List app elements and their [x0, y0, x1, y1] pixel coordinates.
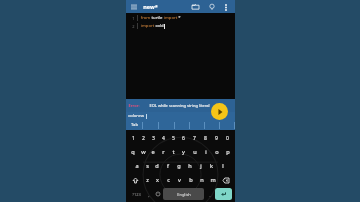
staticText: q — [131, 148, 135, 156]
button[interactable]: 8 — [200, 131, 211, 145]
button[interactable]: d — [152, 159, 162, 173]
button[interactable]: ?123 — [128, 188, 144, 200]
button[interactable]: 6 — [178, 131, 189, 145]
button[interactable]: q — [128, 145, 138, 159]
staticText: v — [178, 176, 181, 184]
button[interactable]: 5 — [168, 131, 178, 145]
button[interactable]: 2 — [138, 131, 148, 145]
button[interactable]: w — [138, 145, 148, 159]
staticText: 9 — [215, 135, 218, 142]
button[interactable]: 3 — [148, 131, 158, 145]
button[interactable]: c — [163, 173, 174, 187]
button[interactable]: s — [142, 159, 152, 173]
button[interactable]: x — [152, 173, 163, 187]
button[interactable]: 1 — [126, 13, 235, 99]
staticText: EOL while scanning string literal (<unkn… — [142, 103, 217, 108]
staticText: 7 — [193, 135, 196, 142]
button[interactable]: Enter — [215, 188, 232, 200]
button[interactable]: 0 — [222, 131, 233, 145]
button[interactable]: More options — [221, 2, 231, 12]
button[interactable]: g — [173, 159, 184, 173]
button[interactable]: 4 — [158, 131, 168, 145]
staticText: 8 — [204, 135, 207, 142]
button[interactable]: 9 — [211, 131, 222, 145]
staticText: z — [146, 176, 149, 184]
staticText: g — [177, 162, 181, 170]
staticText: cold — [155, 23, 164, 29]
button[interactable]: j — [195, 159, 206, 173]
button[interactable]: n — [196, 173, 207, 187]
button[interactable]: Open file — [190, 1, 201, 12]
button[interactable]: Shift — [128, 173, 142, 187]
button[interactable]: z — [142, 173, 152, 187]
button[interactable]: m — [207, 173, 218, 187]
staticText: x — [156, 176, 159, 184]
button[interactable]: o — [211, 145, 222, 159]
staticText: colonna — [128, 113, 144, 119]
staticText: Tab — [131, 122, 138, 128]
button[interactable]: Tab — [126, 120, 142, 130]
button[interactable]: t — [168, 145, 178, 159]
button[interactable]: f — [162, 159, 173, 173]
staticText: English — [177, 192, 191, 197]
staticText: Error: — [128, 103, 140, 108]
button[interactable]: e — [148, 145, 158, 159]
button[interactable]: h — [184, 159, 195, 173]
button[interactable]: 7 — [189, 131, 200, 145]
staticText: m — [210, 176, 216, 184]
staticText: s — [146, 162, 149, 170]
button[interactable]: Menu — [129, 2, 139, 12]
staticText: l — [222, 162, 224, 170]
button[interactable]: v — [174, 173, 185, 187]
staticText: 1 — [132, 135, 135, 142]
staticText: c — [167, 176, 170, 184]
button[interactable]: . — [205, 188, 214, 200]
button[interactable]: p — [222, 145, 233, 159]
staticText: 0 — [226, 135, 229, 142]
staticText: import — [163, 15, 178, 21]
staticText: , — [148, 191, 150, 198]
button[interactable]: u — [189, 145, 200, 159]
staticText: 6 — [182, 135, 185, 142]
staticText: . — [209, 191, 211, 198]
staticText: i — [205, 148, 207, 156]
button[interactable]: y — [178, 145, 189, 159]
staticText: import — [140, 23, 155, 29]
button[interactable]: English — [163, 188, 204, 200]
button[interactable]: a — [132, 159, 142, 173]
staticText: e — [151, 148, 155, 156]
staticText: 2 — [132, 24, 135, 29]
staticText: 1 — [132, 16, 135, 21]
staticText: u — [193, 148, 197, 156]
staticText: h — [188, 162, 192, 170]
button[interactable]: Emoji — [153, 188, 162, 200]
staticText: b — [189, 176, 193, 184]
staticText: n — [200, 176, 204, 184]
staticText: from — [140, 15, 151, 21]
button[interactable]: Run — [211, 103, 228, 120]
button[interactable]: r — [158, 145, 168, 159]
staticText: 5 — [172, 135, 175, 142]
staticText: r — [162, 148, 165, 156]
button[interactable]: b — [185, 173, 196, 187]
button[interactable]: new* — [143, 3, 158, 10]
button[interactable]: Backspace — [218, 173, 233, 187]
button[interactable]: i — [200, 145, 211, 159]
staticText: j — [200, 162, 202, 170]
button[interactable]: Bookmark — [206, 1, 217, 12]
staticText: w — [141, 148, 146, 156]
button[interactable]: k — [206, 159, 217, 173]
staticText: t — [172, 148, 175, 156]
button[interactable]: Error: — [128, 99, 217, 112]
button[interactable]: 1 — [128, 131, 138, 145]
button[interactable]: , — [144, 188, 153, 200]
staticText: a — [135, 162, 139, 170]
staticText: p — [226, 148, 230, 156]
button[interactable]: l — [217, 159, 228, 173]
